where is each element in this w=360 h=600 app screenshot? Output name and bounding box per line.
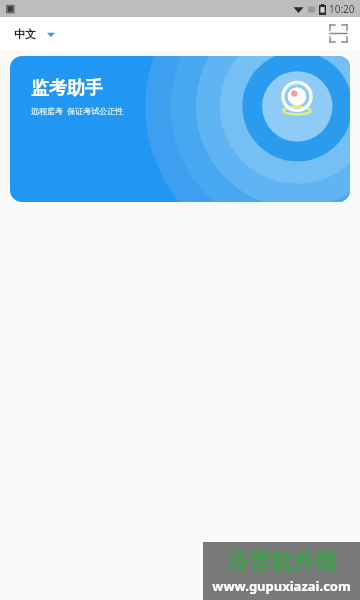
staticText: 监考助手 bbox=[31, 77, 103, 100]
staticText: 远程监考 保证考试公正性 bbox=[31, 105, 124, 116]
button[interactable]: 中文 bbox=[10, 23, 59, 45]
button[interactable]: 监考助手 bbox=[10, 56, 350, 202]
staticText: 10:20 bbox=[329, 2, 355, 16]
staticText: www.gupuxiazai.com bbox=[212, 577, 351, 595]
staticText: 谷普软件园 bbox=[227, 548, 337, 576]
button[interactable]: Scan QR code bbox=[327, 22, 350, 45]
staticText: 中文 bbox=[14, 27, 36, 41]
